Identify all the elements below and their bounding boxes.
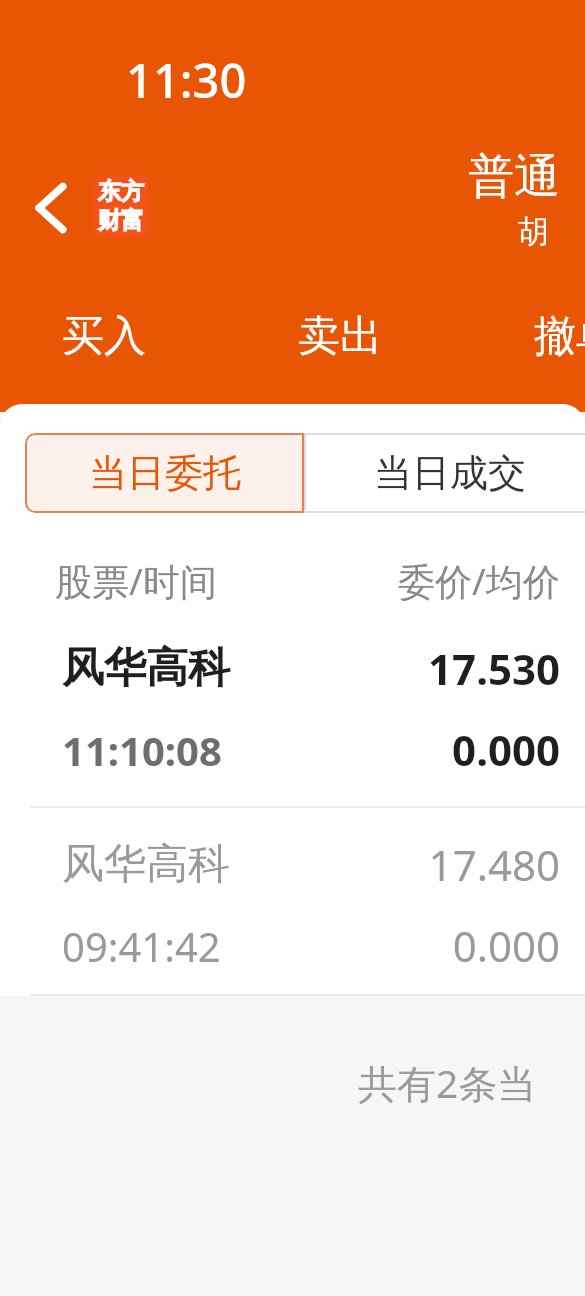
- staticText: 0.000: [452, 721, 560, 778]
- staticText: 财富: [98, 206, 144, 235]
- staticText: 09:41:42: [62, 919, 221, 973]
- staticText: 委价/均价: [398, 555, 560, 606]
- staticText: 共有2条当: [358, 1056, 537, 1109]
- staticText: 买入: [62, 310, 146, 363]
- staticText: 东方: [98, 177, 144, 206]
- staticText: 卖出: [298, 310, 382, 363]
- button[interactable]: 当日委托: [25, 433, 304, 513]
- staticText: 普通: [468, 148, 560, 206]
- button[interactable]: East Money: [92, 175, 149, 237]
- button[interactable]: 当日成交: [304, 433, 585, 513]
- staticText: 0.000: [452, 917, 560, 974]
- staticText: 11:10:08: [62, 723, 222, 777]
- staticText: 风华高科: [62, 642, 230, 695]
- staticText: 11:30: [126, 48, 247, 112]
- button[interactable]: 普通: [468, 148, 560, 251]
- staticText: 撤单: [534, 310, 585, 363]
- button[interactable]: 卖出: [298, 310, 382, 363]
- button[interactable]: Back: [14, 166, 88, 250]
- staticText: 17.530: [428, 640, 560, 697]
- button[interactable]: 风华高科: [0, 836, 585, 974]
- staticText: 股票/时间: [55, 555, 217, 606]
- staticText: 胡: [518, 212, 549, 251]
- staticText: 17.480: [428, 836, 560, 893]
- button[interactable]: 撤单: [534, 310, 585, 363]
- staticText: 当日成交: [374, 449, 526, 497]
- staticText: 风华高科: [62, 838, 230, 891]
- button[interactable]: 买入: [62, 310, 146, 363]
- button[interactable]: 风华高科: [0, 640, 585, 778]
- staticText: 当日委托: [89, 449, 241, 497]
